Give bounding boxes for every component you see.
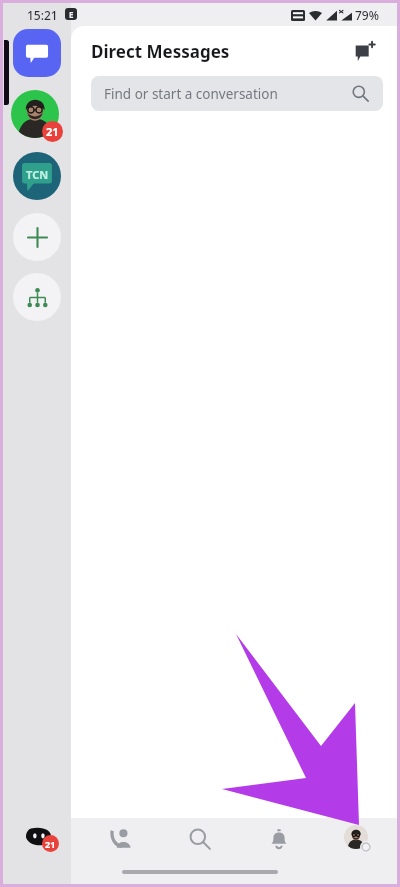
- staticText: Direct Messages: [91, 40, 230, 63]
- staticText: 21: [46, 124, 59, 139]
- staticText: Find or start a conversation: [104, 85, 278, 103]
- button[interactable]: Explore public servers: [13, 273, 61, 321]
- staticText: 21: [45, 838, 56, 850]
- staticText: TCN: [26, 167, 49, 182]
- button[interactable]: TCN server: [13, 152, 61, 200]
- button[interactable]: You: [318, 813, 397, 865]
- button[interactable]: Server: [11, 90, 59, 138]
- button[interactable]: Servers: [3, 813, 81, 865]
- button[interactable]: Find or start a conversation: [91, 76, 383, 111]
- staticText: E: [69, 9, 74, 20]
- button[interactable]: Friends: [81, 813, 160, 865]
- staticText: 15:21: [27, 7, 58, 23]
- button[interactable]: Search: [160, 813, 239, 865]
- staticText: 79%: [355, 7, 379, 23]
- button[interactable]: Direct Messages: [13, 29, 61, 77]
- button[interactable]: Notifications: [239, 813, 318, 865]
- button[interactable]: New conversation: [347, 34, 381, 68]
- button[interactable]: Add a server: [13, 213, 61, 261]
